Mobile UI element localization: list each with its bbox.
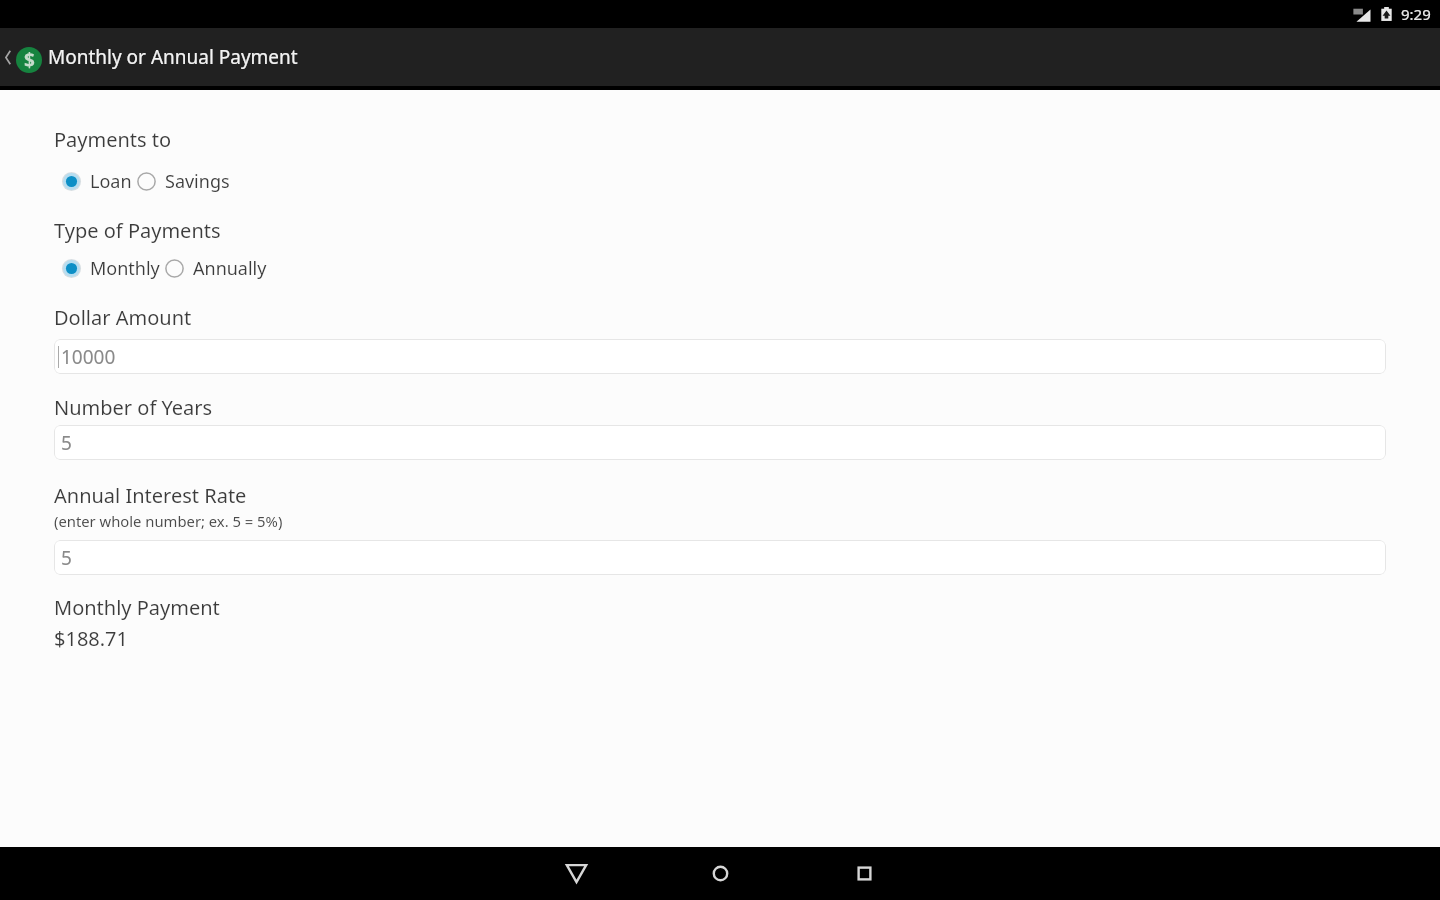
staticText: Annual Interest Rate bbox=[54, 482, 247, 509]
button[interactable]: Home bbox=[648, 847, 792, 900]
staticText: Savings bbox=[165, 169, 230, 194]
button[interactable]: Back bbox=[0, 40, 16, 74]
staticText: Monthly or Annual Payment bbox=[48, 44, 298, 70]
staticText: $ bbox=[24, 47, 35, 73]
staticText: 9:29 bbox=[1401, 4, 1431, 24]
button[interactable]: Savings bbox=[136, 169, 230, 194]
staticText: Annually bbox=[193, 256, 267, 281]
staticText: Dollar Amount bbox=[54, 304, 192, 331]
button[interactable]: 5 bbox=[54, 425, 1386, 460]
staticText: 5 bbox=[61, 545, 72, 571]
button[interactable]: Loan bbox=[61, 169, 132, 194]
button[interactable]: Back bbox=[504, 847, 648, 900]
button[interactable]: Recents bbox=[792, 847, 936, 900]
button[interactable]: 10000 bbox=[54, 339, 1386, 374]
staticText: 5 bbox=[61, 430, 72, 456]
button[interactable]: 5 bbox=[54, 540, 1386, 575]
staticText: Payments to bbox=[54, 126, 172, 153]
staticText: Number of Years bbox=[54, 394, 213, 421]
staticText: Monthly Payment bbox=[54, 594, 220, 621]
staticText: Monthly bbox=[90, 256, 160, 281]
staticText: $188.71 bbox=[54, 625, 128, 652]
button[interactable]: Annually bbox=[164, 256, 267, 281]
staticText: Type of Payments bbox=[54, 217, 221, 244]
staticText: Loan bbox=[90, 169, 132, 194]
button[interactable]: Monthly bbox=[61, 256, 160, 281]
staticText: (enter whole number; ex. 5 = 5%) bbox=[54, 511, 283, 531]
staticText: 10000 bbox=[61, 344, 116, 370]
